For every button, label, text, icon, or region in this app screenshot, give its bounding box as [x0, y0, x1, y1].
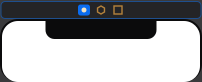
button[interactable]: Color scheme	[95, 4, 107, 15]
button[interactable]: Dynamic type	[112, 4, 124, 15]
button[interactable]: Device settings	[78, 4, 90, 15]
